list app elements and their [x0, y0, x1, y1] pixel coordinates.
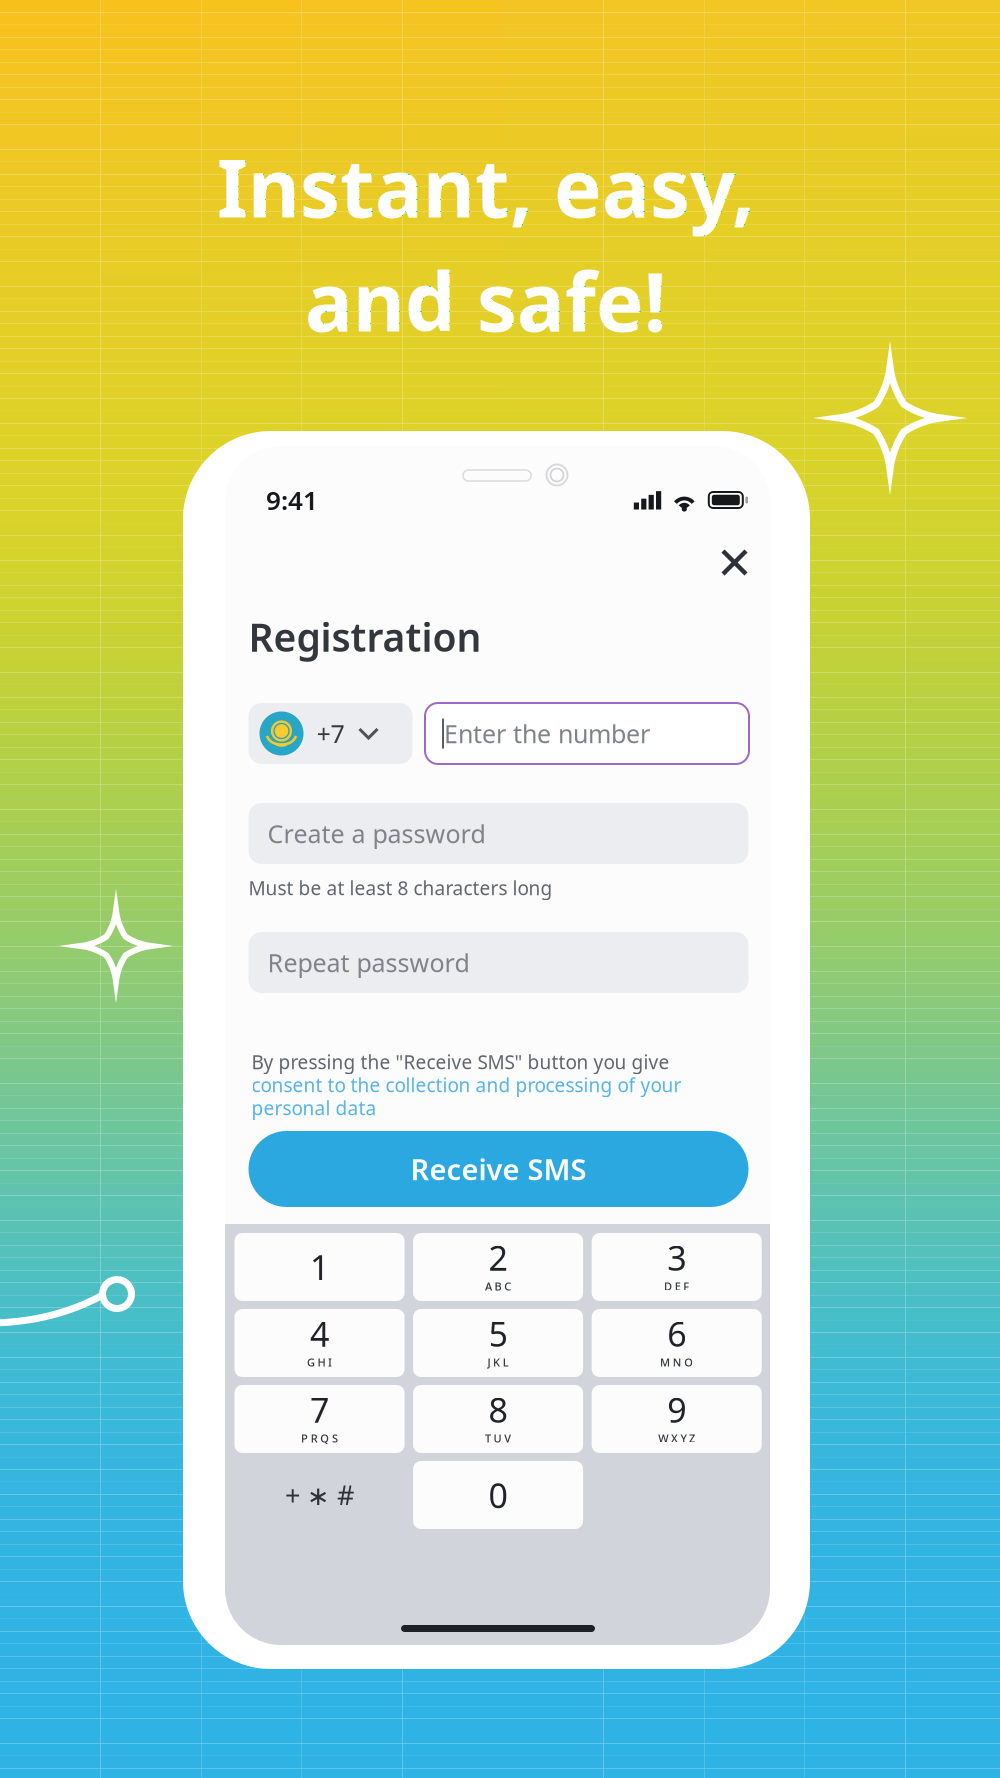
staticText: ABC — [485, 1279, 511, 1294]
staticText: Repeat password — [267, 945, 469, 979]
staticText: TUV — [485, 1431, 511, 1446]
staticText: and safe! — [305, 246, 667, 355]
staticText: PRQS — [301, 1431, 338, 1446]
staticText: Instant, easy, — [217, 132, 755, 241]
staticText: 1 — [310, 1244, 329, 1290]
staticText: 3 — [667, 1234, 686, 1281]
staticText: GHI — [307, 1355, 332, 1370]
button[interactable]: 9 — [592, 1385, 762, 1453]
button[interactable]: 0 — [413, 1461, 583, 1529]
button[interactable]: Create a password — [248, 803, 748, 864]
button[interactable]: 1 — [234, 1233, 404, 1301]
button[interactable]: 4 — [234, 1309, 404, 1377]
staticText: Enter the number — [444, 716, 650, 750]
staticText: 5 — [489, 1310, 508, 1357]
staticText: Must be at least 8 characters long — [248, 875, 552, 901]
staticText: JKL — [487, 1355, 509, 1370]
staticText: Registration — [248, 610, 481, 663]
button[interactable]: 5 — [413, 1309, 583, 1377]
staticText: DEF — [664, 1279, 689, 1294]
button[interactable]: 6 — [592, 1309, 762, 1377]
button[interactable]: 7 — [234, 1385, 404, 1453]
button[interactable]: Symbols — [234, 1461, 404, 1529]
staticText: WXYZ — [658, 1431, 695, 1446]
staticText: By pressing the "Receive SMS" button you… — [251, 1049, 669, 1075]
staticText: 6 — [667, 1310, 686, 1357]
staticText: Receive SMS — [410, 1149, 586, 1189]
staticText: consent to the collection and processing… — [251, 1072, 681, 1098]
staticText: personal data — [251, 1095, 376, 1121]
staticText: 8 — [489, 1386, 508, 1433]
staticText: MNO — [660, 1355, 693, 1370]
button[interactable]: 8 — [413, 1385, 583, 1453]
button[interactable]: Enter the number — [425, 703, 749, 764]
button[interactable]: Country code +7 — [248, 703, 412, 764]
staticText: 7 — [310, 1386, 329, 1433]
staticText: 2 — [489, 1234, 508, 1281]
staticText: 0 — [489, 1472, 508, 1518]
button[interactable]: Receive SMS — [248, 1131, 748, 1207]
button[interactable]: Close — [707, 535, 762, 590]
staticText: 4 — [310, 1310, 329, 1357]
staticText: Create a password — [267, 816, 485, 850]
button[interactable]: 3 — [592, 1233, 762, 1301]
button[interactable]: Repeat password — [248, 932, 748, 993]
staticText: +7 — [316, 716, 344, 750]
button[interactable]: 2 — [413, 1233, 583, 1301]
staticText: 9 — [667, 1386, 686, 1433]
staticText: 9:41 — [266, 482, 318, 518]
staticText: + ∗ # — [285, 1477, 354, 1513]
